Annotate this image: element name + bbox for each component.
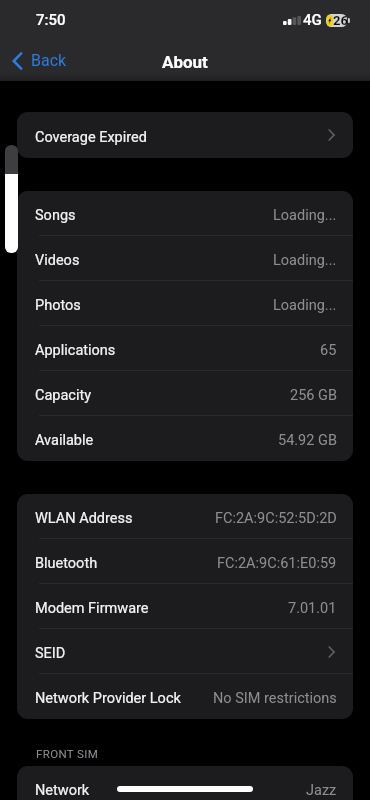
staticText: SEID <box>35 645 66 662</box>
staticText: Songs <box>35 207 76 224</box>
button[interactable]: Coverage Expired <box>17 112 353 158</box>
staticText: 7:50 <box>36 11 66 29</box>
other: Volume <box>5 145 18 253</box>
button[interactable]: Available <box>17 416 353 461</box>
button[interactable]: Bluetooth <box>17 539 353 584</box>
staticText: About <box>162 52 208 72</box>
button[interactable]: Photos <box>17 281 353 326</box>
staticText: Network Provider Lock <box>35 690 181 707</box>
button[interactable]: Applications <box>17 326 353 371</box>
staticText: Back <box>31 51 67 70</box>
button[interactable]: Capacity <box>17 371 353 416</box>
staticText: Coverage Expired <box>35 129 147 146</box>
staticText: 26 <box>333 13 348 28</box>
button[interactable]: Modem Firmware <box>17 584 353 629</box>
staticText: Bluetooth <box>35 555 98 572</box>
button[interactable]: Network Provider Lock <box>17 674 353 719</box>
button[interactable]: Network <box>17 766 353 800</box>
staticText: Loading... <box>273 207 337 224</box>
staticText: Applications <box>35 342 116 359</box>
staticText: Photos <box>35 297 81 314</box>
button[interactable]: Videos <box>17 236 353 281</box>
staticText: Jazz <box>306 782 337 799</box>
staticText: Available <box>35 432 94 449</box>
staticText: Loading... <box>273 297 337 314</box>
staticText: No SIM restrictions <box>213 690 337 707</box>
staticText: 4G <box>303 11 322 29</box>
staticText: 54.92 GB <box>278 432 337 449</box>
staticText: 7.01.01 <box>288 600 337 617</box>
staticText: FC:2A:9C:61:E0:59 <box>217 555 337 572</box>
staticText: Modem Firmware <box>35 600 149 617</box>
button[interactable]: WLAN Address <box>17 494 353 539</box>
button[interactable]: Back <box>8 48 71 75</box>
staticText: Loading... <box>273 252 337 269</box>
staticText: Network <box>35 782 90 799</box>
staticText: Capacity <box>35 387 92 404</box>
button[interactable]: Songs <box>17 191 353 236</box>
staticText: FC:2A:9C:52:5D:2D <box>215 510 337 527</box>
staticText: 65 <box>320 342 337 359</box>
button[interactable]: SEID <box>17 629 353 674</box>
staticText: 256 GB <box>290 387 337 404</box>
staticText: FRONT SIM <box>36 747 99 760</box>
staticText: Videos <box>35 252 80 269</box>
staticText: WLAN Address <box>35 510 133 527</box>
